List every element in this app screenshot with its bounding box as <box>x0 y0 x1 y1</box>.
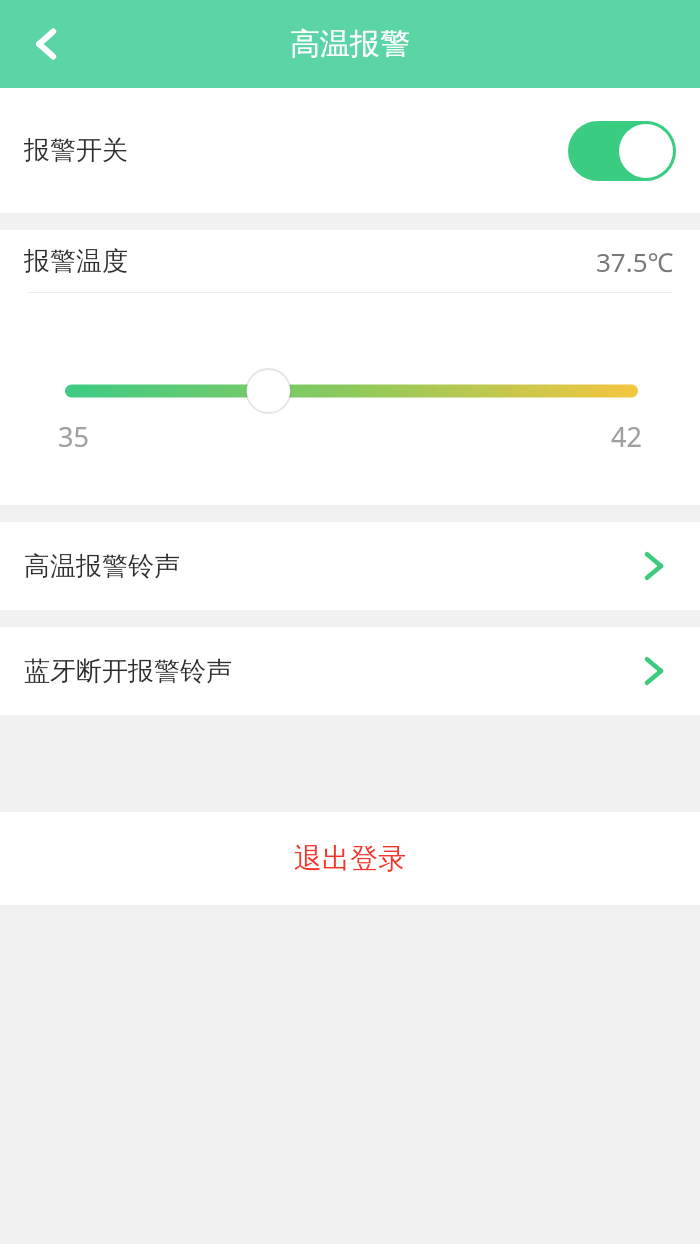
staticText: 蓝牙断开报警铃声 <box>24 655 232 688</box>
button[interactable]: Alarm temperature slider, 37.5 degrees <box>0 293 700 505</box>
staticText: 42 <box>611 418 642 455</box>
button[interactable]: 报警开关 <box>0 88 700 213</box>
button[interactable]: 退出登录 <box>0 812 700 905</box>
staticText: 高温报警 <box>290 25 410 63</box>
staticText: 高温报警铃声 <box>24 550 180 583</box>
staticText: 退出登录 <box>294 841 406 876</box>
staticText: 35 <box>58 418 89 455</box>
staticText: 37.5℃ <box>596 244 674 279</box>
staticText: 报警温度 <box>24 245 128 278</box>
staticText: 报警开关 <box>24 134 128 167</box>
button[interactable]: 蓝牙断开报警铃声 <box>0 627 700 715</box>
button[interactable]: Alarm switch, on <box>568 121 676 181</box>
button[interactable]: 高温报警铃声 <box>0 522 700 610</box>
button[interactable]: Back <box>12 10 80 78</box>
